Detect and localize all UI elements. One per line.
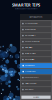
staticText: Keyboards & pencils [25, 41, 40, 42]
button[interactable]: Trade-in values [20, 69, 52, 74]
button[interactable]: Keyboards & pencils [20, 39, 52, 44]
staticText: Battery life tips [25, 47, 33, 48]
staticText: GET TABLET TIPS [29, 16, 42, 18]
button[interactable]: Pick the right chip [20, 27, 52, 32]
staticText: Software updates [25, 83, 37, 84]
button[interactable]: Best for drawing [20, 51, 52, 56]
staticText: Best iPads, Galaxy Tabs and more [14, 8, 37, 10]
staticText: SMARTER TIPS [12, 2, 40, 7]
staticText: Storage matters [25, 35, 36, 36]
staticText: Best for drawing [25, 53, 36, 54]
staticText: Kids and families [25, 59, 35, 60]
staticText: Where to buy [25, 89, 34, 90]
button[interactable]: Screen size guide [20, 21, 52, 26]
button[interactable]: Software updates [20, 81, 52, 86]
button[interactable]: See all tips [20, 96, 52, 100]
button[interactable]: GET TABLET TIPS [20, 14, 52, 20]
staticText: Screen size guide [25, 23, 38, 24]
staticText: Trade-in values [25, 71, 36, 72]
staticText: See all tips [32, 96, 39, 98]
staticText: Deals this week [25, 65, 35, 66]
button[interactable]: Deals this week [20, 63, 52, 68]
button[interactable]: Cases and covers [20, 75, 52, 80]
button[interactable]: Storage matters [20, 33, 52, 38]
button[interactable]: Where to buy [20, 87, 52, 92]
staticText: Pick the right chip [25, 29, 36, 30]
button[interactable]: Kids and families [20, 57, 52, 62]
staticText: Cases and covers [25, 77, 39, 78]
button[interactable]: Battery life tips [20, 45, 52, 50]
